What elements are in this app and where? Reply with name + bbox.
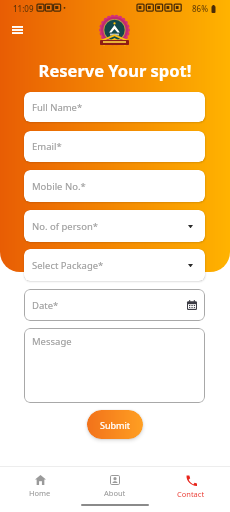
button[interactable]: Select Package* xyxy=(24,249,205,281)
button[interactable]: Message xyxy=(24,328,205,403)
button[interactable]: Mobile No.* xyxy=(24,170,205,202)
button[interactable]: Contact xyxy=(155,471,227,505)
staticText: Message xyxy=(32,335,72,348)
button[interactable]: About xyxy=(79,471,151,505)
staticText: No. of person* xyxy=(32,220,98,233)
button[interactable]: Home xyxy=(4,471,76,505)
staticText: About xyxy=(104,488,126,498)
staticText: Reserve Your spot! xyxy=(0,59,230,81)
button[interactable]: Submit xyxy=(87,410,143,439)
staticText: Submit xyxy=(100,419,131,431)
staticText: Select Package* xyxy=(32,259,104,272)
button[interactable]: Email* xyxy=(24,131,205,162)
staticText: 86% xyxy=(192,3,208,14)
button[interactable]: Date* xyxy=(24,289,205,321)
staticText: Full Name* xyxy=(32,101,83,114)
staticText: Home xyxy=(29,488,51,498)
button[interactable]: Full Name* xyxy=(24,92,205,122)
button[interactable]: No. of person* xyxy=(24,210,205,242)
button[interactable]: Menu xyxy=(5,18,29,42)
staticText: Contact xyxy=(177,489,205,499)
staticText: 11:09 xyxy=(13,3,34,14)
staticText: Email* xyxy=(32,140,62,153)
staticText: Date* xyxy=(32,299,59,312)
staticText: Mobile No.* xyxy=(32,180,86,193)
